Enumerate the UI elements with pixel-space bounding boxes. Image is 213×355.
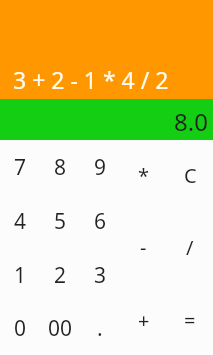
staticText: - [140,234,147,261]
button[interactable]: Digit 9 [80,140,120,194]
staticText: = [184,307,196,334]
staticText: 0 [14,314,27,343]
button[interactable]: Clear [167,140,213,210]
staticText: 7 [14,153,27,182]
button[interactable]: Multiply [120,140,167,210]
button[interactable]: Digit 4 [0,194,40,248]
staticText: / [186,234,194,261]
staticText: 1 [14,261,27,290]
staticText: 5 [54,207,67,236]
button[interactable]: Decimal point [80,302,120,355]
button[interactable]: Digit 3 [80,248,120,302]
staticText: + [138,307,150,334]
staticText: 3 [94,261,107,290]
button[interactable]: 3 + 2 - 1 * 4 / 2 [0,0,213,99]
button[interactable]: Subtract [120,210,167,285]
staticText: * [138,162,150,189]
button[interactable]: Digit 7 [0,140,40,194]
button[interactable]: Digit 1 [0,248,40,302]
button[interactable]: Digit 2 [40,248,80,302]
button[interactable]: Equals [167,285,213,355]
staticText: 6 [94,207,107,236]
button[interactable]: 8.0 [0,99,213,140]
staticText: C [184,162,197,189]
button[interactable]: Digit 8 [40,140,80,194]
button[interactable]: Digit 6 [80,194,120,248]
staticText: 8.0 [174,105,208,138]
staticText: 8 [54,153,67,182]
button[interactable]: Digit 00 [40,302,80,355]
staticText: 4 [14,207,27,236]
staticText: 9 [94,153,107,182]
button[interactable]: Digit 5 [40,194,80,248]
staticText: 00 [48,314,73,343]
button[interactable]: Add [120,285,167,355]
staticText: 3 + 2 - 1 * 4 / 2 [13,64,169,95]
button[interactable]: Divide [167,210,213,285]
button[interactable]: Digit 0 [0,302,40,355]
staticText: . [97,314,103,343]
staticText: 2 [54,261,67,290]
